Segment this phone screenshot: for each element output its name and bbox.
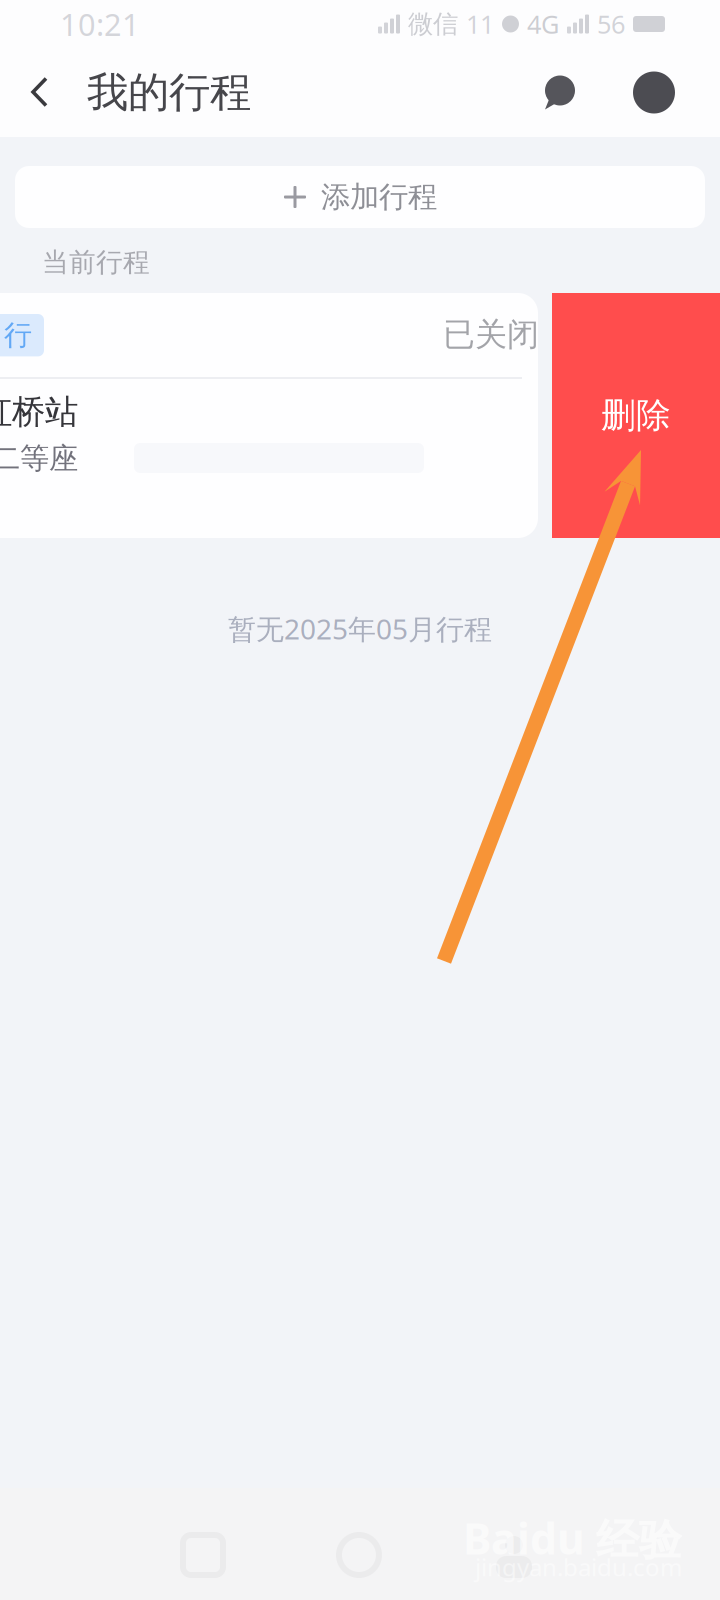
staticText: 当前行程	[42, 246, 150, 279]
button[interactable]: 添加行程	[15, 166, 705, 228]
staticText: 已关闭	[443, 315, 539, 354]
staticText: 添加行程	[321, 179, 437, 215]
button[interactable]: 我的行程	[87, 48, 251, 137]
staticText: 杭州东站 → 上海虹桥站	[0, 391, 78, 432]
button[interactable]: 我的	[616, 48, 692, 137]
staticText: 待出行	[0, 318, 32, 352]
staticText: 11	[466, 7, 494, 41]
staticText: Baidu 经验	[463, 1510, 682, 1566]
button[interactable]: 返回	[8, 48, 72, 137]
button[interactable]: 消息	[522, 48, 598, 137]
button[interactable]: 删除	[552, 293, 720, 538]
staticText: 暂无2025年05月行程	[228, 610, 492, 647]
staticText: 10:21	[60, 4, 140, 44]
staticText: 4G	[527, 7, 559, 41]
staticText: 微信	[408, 8, 458, 39]
staticText: 我的行程	[87, 67, 251, 118]
staticText: jingyan.baidu.com	[475, 1551, 682, 1583]
staticText: 56	[597, 7, 625, 41]
staticText: 删除	[601, 394, 671, 437]
staticText: G7338 · 二等座	[0, 437, 78, 476]
